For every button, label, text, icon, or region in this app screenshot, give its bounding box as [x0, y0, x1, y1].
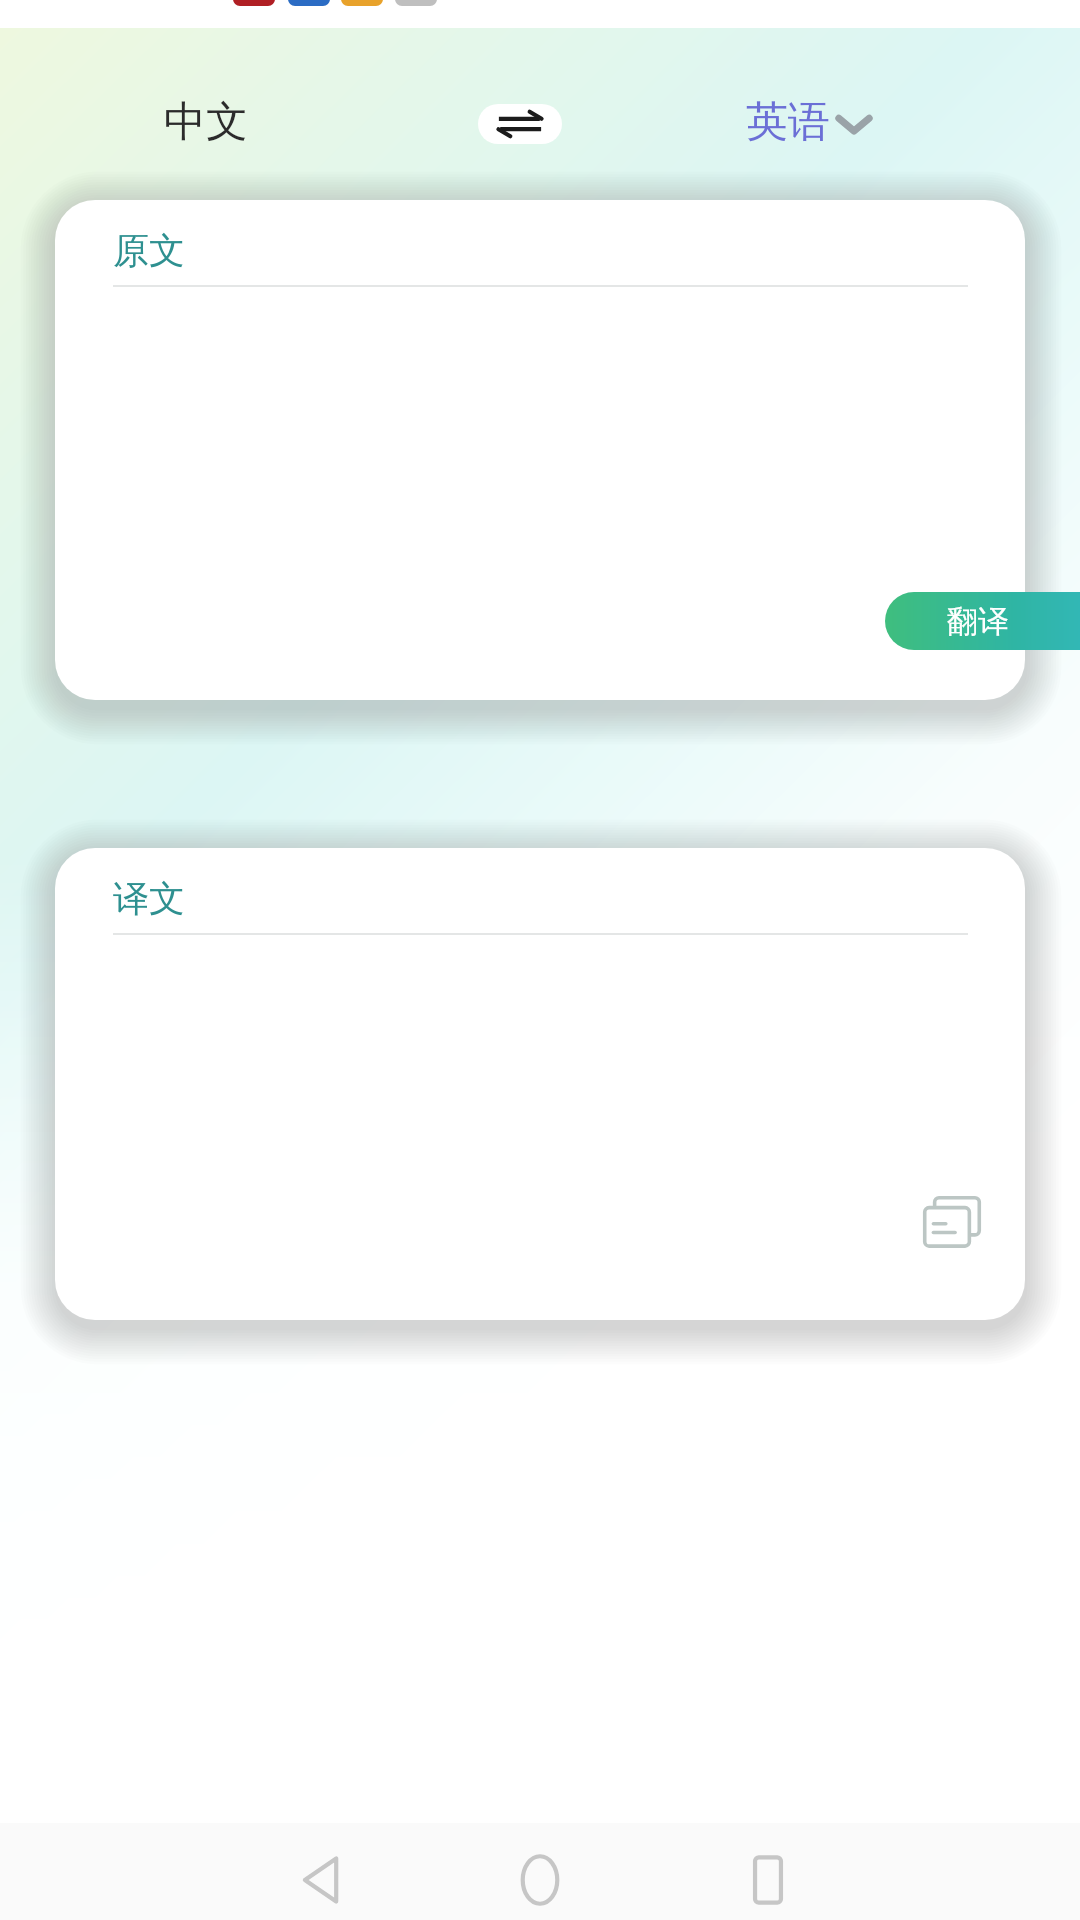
- button[interactable]: 译文: [55, 848, 1025, 1320]
- staticText: 中文: [164, 96, 248, 149]
- staticText: 原文: [113, 228, 185, 273]
- button[interactable]: 翻译: [885, 592, 1080, 650]
- button[interactable]: Recent apps: [706, 1831, 830, 1920]
- button[interactable]: 原文: [55, 200, 1025, 700]
- staticText: 英语: [746, 96, 830, 149]
- button[interactable]: 中文: [164, 96, 248, 149]
- staticText: 翻译: [947, 602, 1009, 641]
- button[interactable]: Swap languages: [478, 104, 562, 144]
- button[interactable]: Copy translation: [907, 1180, 997, 1270]
- button[interactable]: 英语: [746, 96, 874, 149]
- button[interactable]: Home: [478, 1831, 602, 1920]
- button[interactable]: Back: [258, 1831, 382, 1920]
- staticText: 译文: [113, 876, 185, 921]
